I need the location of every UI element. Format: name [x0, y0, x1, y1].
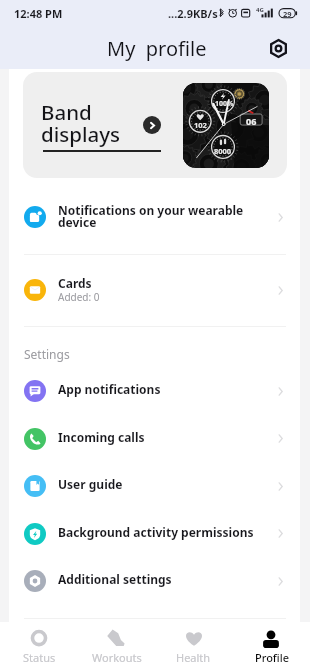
button[interactable] [0, 622, 78, 672]
button[interactable] [78, 622, 156, 672]
staticText: Additional settings [58, 571, 172, 587]
staticText: Incoming calls [58, 429, 145, 445]
button[interactable]: Settings [264, 34, 293, 63]
staticText: displays [41, 120, 120, 148]
button[interactable]: Background activity permissions [9, 510, 300, 558]
staticText: Background activity permissions [58, 524, 254, 540]
staticText: App notifications [58, 381, 161, 397]
staticText: 100% [215, 99, 234, 109]
staticText: Profile [255, 650, 290, 665]
staticText: 102 [194, 120, 207, 130]
staticText: Workouts [92, 650, 142, 665]
staticText: device [58, 214, 97, 230]
staticText: User guide [58, 476, 123, 492]
button[interactable] [233, 622, 310, 672]
staticText: My profile [107, 35, 207, 62]
button[interactable]: Band [23, 72, 287, 178]
staticText: 29 [283, 9, 292, 19]
staticText: 06 [246, 115, 257, 127]
staticText: 8000 [214, 146, 232, 156]
staticText: ...2.9KB/s [168, 6, 218, 21]
button[interactable]: Incoming calls [9, 415, 300, 463]
staticText: 4G [256, 6, 264, 14]
staticText: Settings [24, 346, 70, 362]
staticText: Added: 0 [58, 290, 100, 304]
staticText: Status [23, 650, 56, 665]
staticText: Band [41, 98, 92, 126]
button[interactable]: Open band displays [143, 116, 161, 134]
button[interactable]: Additional settings [9, 557, 300, 605]
button[interactable] [155, 622, 233, 672]
button[interactable]: User guide [9, 462, 300, 510]
button[interactable]: Cards [9, 254, 300, 326]
staticText: Health [176, 650, 211, 665]
button[interactable]: App notifications [9, 367, 300, 415]
button[interactable]: Notifications on your wearable device [9, 180, 300, 254]
staticText: Notifications on your wearable [58, 202, 244, 218]
staticText: Cards [58, 275, 92, 291]
staticText: 12:48 PM [14, 6, 63, 21]
